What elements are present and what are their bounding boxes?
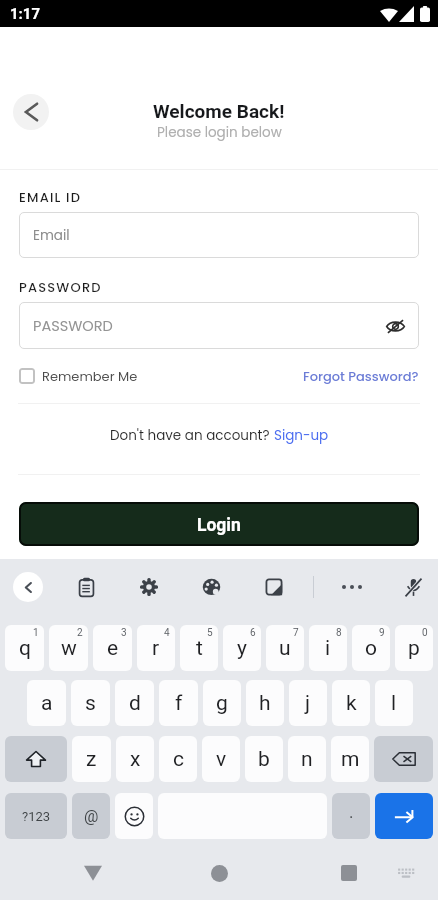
staticText: c bbox=[173, 747, 184, 772]
staticText: h bbox=[259, 691, 271, 716]
staticText: 2 bbox=[77, 627, 83, 639]
staticText: w bbox=[61, 636, 77, 661]
staticText: 6 bbox=[250, 627, 256, 639]
button[interactable]: At sign bbox=[72, 793, 110, 839]
staticText: o bbox=[365, 636, 377, 661]
staticText: 9 bbox=[379, 627, 385, 639]
button[interactable]: Themes bbox=[195, 571, 227, 603]
button[interactable]: w bbox=[49, 625, 88, 671]
button[interactable]: a bbox=[27, 680, 66, 726]
button[interactable]: g bbox=[203, 680, 241, 726]
button[interactable]: Home bbox=[198, 849, 240, 891]
button[interactable]: Voice input off bbox=[397, 571, 429, 603]
staticText: 0 bbox=[422, 627, 428, 639]
button[interactable]: s bbox=[71, 680, 110, 726]
staticText: s bbox=[85, 691, 96, 716]
staticText: v bbox=[216, 747, 227, 772]
button[interactable]: c bbox=[159, 736, 197, 782]
staticText: @ bbox=[84, 807, 99, 826]
button[interactable]: z bbox=[72, 736, 111, 782]
button[interactable]: q bbox=[5, 625, 44, 671]
staticText: d bbox=[129, 691, 141, 716]
staticText: 1:17 bbox=[10, 5, 41, 23]
staticText: a bbox=[41, 691, 53, 716]
button[interactable]: Hide keyboard bbox=[385, 849, 427, 891]
button[interactable]: Emoji bbox=[115, 793, 153, 839]
staticText: PASSWORD bbox=[19, 278, 102, 296]
staticText: EMAIL ID bbox=[19, 188, 82, 206]
button[interactable]: Settings bbox=[133, 571, 165, 603]
button[interactable]: r bbox=[137, 625, 175, 671]
button[interactable]: Back bbox=[72, 849, 114, 891]
staticText: Email bbox=[33, 226, 70, 245]
staticText: 5 bbox=[207, 627, 213, 639]
staticText: PASSWORD bbox=[33, 316, 113, 336]
button[interactable]: u bbox=[266, 625, 304, 671]
button[interactable]: Symbols bbox=[5, 793, 67, 839]
staticText: y bbox=[237, 636, 247, 661]
button[interactable]: m bbox=[331, 736, 369, 782]
button[interactable]: v bbox=[202, 736, 240, 782]
button[interactable]: Forgot Password? bbox=[303, 365, 419, 387]
button[interactable]: Period bbox=[332, 793, 370, 839]
button[interactable]: t bbox=[180, 625, 218, 671]
button[interactable]: Recents bbox=[328, 849, 370, 891]
button[interactable]: e bbox=[93, 625, 132, 671]
button[interactable]: Email bbox=[19, 212, 419, 258]
button[interactable]: y bbox=[223, 625, 261, 671]
staticText: r bbox=[152, 636, 160, 661]
staticText: m bbox=[341, 747, 360, 772]
button[interactable]: Resize bbox=[258, 571, 290, 603]
button[interactable]: o bbox=[352, 625, 390, 671]
button[interactable]: f bbox=[159, 680, 198, 726]
staticText: Don't have an account? bbox=[110, 426, 274, 445]
staticText: 8 bbox=[336, 627, 342, 639]
button[interactable]: Show password bbox=[381, 312, 409, 340]
button[interactable]: Back bbox=[13, 94, 49, 130]
staticText: 3 bbox=[121, 627, 127, 639]
staticText: g bbox=[216, 691, 228, 716]
button[interactable]: d bbox=[115, 680, 154, 726]
button[interactable]: j bbox=[289, 680, 327, 726]
staticText: 4 bbox=[164, 627, 170, 639]
button[interactable]: p bbox=[395, 625, 433, 671]
staticText: k bbox=[346, 691, 357, 716]
staticText: u bbox=[279, 636, 291, 661]
staticText: j bbox=[305, 691, 311, 716]
staticText: p bbox=[408, 636, 420, 661]
staticText: x bbox=[130, 747, 141, 772]
button[interactable]: PASSWORD bbox=[19, 302, 419, 349]
button[interactable]: Enter bbox=[375, 793, 433, 839]
staticText: f bbox=[175, 691, 183, 716]
staticText: n bbox=[301, 747, 313, 772]
staticText: l bbox=[391, 691, 397, 716]
staticText: Remember Me bbox=[42, 367, 138, 385]
staticText: 7 bbox=[293, 627, 299, 639]
button[interactable]: l bbox=[375, 680, 413, 726]
button[interactable]: Login bbox=[19, 502, 419, 546]
button[interactable]: Back bbox=[13, 572, 43, 602]
staticText: q bbox=[19, 636, 31, 661]
button[interactable]: x bbox=[116, 736, 154, 782]
staticText: i bbox=[325, 636, 331, 661]
button[interactable]: k bbox=[332, 680, 370, 726]
button[interactable]: More options bbox=[336, 571, 368, 603]
button[interactable]: i bbox=[309, 625, 347, 671]
staticText: Login bbox=[197, 515, 241, 536]
button[interactable]: b bbox=[245, 736, 283, 782]
staticText: 1 bbox=[33, 627, 39, 639]
staticText: e bbox=[107, 636, 119, 661]
button[interactable]: Sign-up bbox=[274, 426, 329, 445]
staticText: . bbox=[349, 802, 354, 822]
button[interactable]: Remember Me bbox=[19, 365, 138, 387]
button[interactable]: Clipboard bbox=[70, 571, 102, 603]
button[interactable]: Shift bbox=[5, 736, 67, 782]
staticText: ?123 bbox=[22, 809, 51, 824]
button[interactable]: Backspace bbox=[374, 736, 433, 782]
staticText: Please login below bbox=[157, 123, 282, 142]
button[interactable]: h bbox=[246, 680, 284, 726]
staticText: Welcome Back! bbox=[153, 100, 285, 122]
button[interactable]: n bbox=[288, 736, 326, 782]
staticText: z bbox=[86, 747, 97, 772]
